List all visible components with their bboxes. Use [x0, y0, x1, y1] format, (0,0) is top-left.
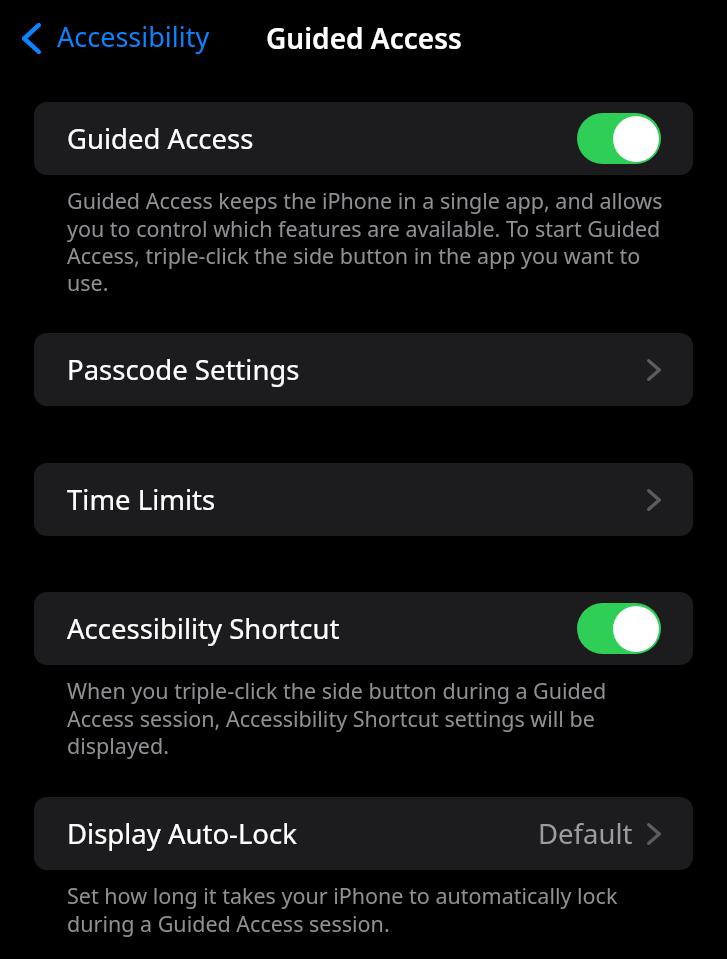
- staticText: When you triple-click the side button du…: [67, 676, 665, 760]
- staticText: Time Limits: [67, 481, 216, 518]
- button[interactable]: Back to Accessibility: [22, 20, 210, 57]
- button[interactable]: Guided Access: [34, 102, 693, 175]
- staticText: Guided Access: [266, 19, 462, 57]
- staticText: Accessibility Shortcut: [67, 610, 340, 647]
- staticText: Default: [538, 815, 633, 852]
- staticText: Set how long it takes your iPhone to aut…: [67, 881, 665, 938]
- button[interactable]: Passcode Settings: [34, 333, 693, 406]
- button[interactable]: Time Limits: [34, 463, 693, 536]
- button[interactable]: Display Auto-Lock: [34, 797, 693, 870]
- button[interactable]: Guided Access on: [577, 113, 661, 164]
- staticText: Display Auto-Lock: [67, 815, 297, 852]
- staticText: Passcode Settings: [67, 351, 300, 388]
- staticText: Guided Access keeps the iPhone in a sing…: [67, 186, 665, 297]
- staticText: Accessibility: [57, 18, 210, 55]
- button[interactable]: Accessibility Shortcut: [34, 592, 693, 665]
- button[interactable]: Accessibility Shortcut on: [577, 603, 661, 654]
- staticText: Guided Access: [67, 120, 254, 157]
